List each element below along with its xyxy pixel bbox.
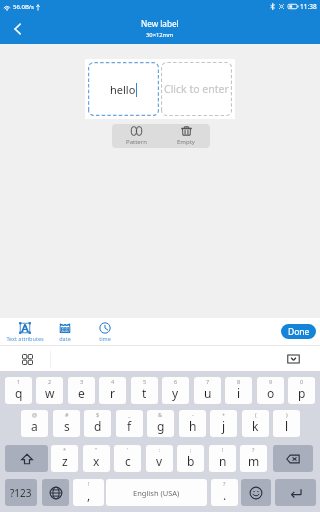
staticText: ?	[223, 480, 226, 487]
staticText: &	[158, 411, 163, 418]
staticText: Text attributes	[6, 335, 44, 342]
button[interactable]: 4	[99, 377, 126, 404]
staticText: *	[63, 446, 67, 453]
button[interactable]: Backspace	[273, 445, 313, 472]
button[interactable]: '	[114, 445, 141, 472]
staticText: s	[64, 418, 70, 434]
staticText: 3	[80, 378, 84, 385]
button[interactable]: !	[73, 479, 104, 506]
staticText: New label	[141, 18, 179, 29]
staticText: j	[222, 418, 226, 434]
staticText: ,	[87, 487, 91, 503]
staticText: x	[93, 453, 100, 469]
staticText: +	[222, 411, 226, 418]
button[interactable]: Enter	[275, 479, 316, 506]
button[interactable]: Pattern	[125, 124, 147, 148]
button[interactable]: 5	[131, 377, 158, 404]
button[interactable]: Hide keyboard	[283, 349, 303, 369]
button[interactable]: Text attributes	[5, 318, 45, 345]
staticText: :	[159, 446, 161, 453]
staticText: #	[65, 411, 69, 418]
staticText: "	[95, 446, 98, 453]
button[interactable]: 7	[194, 377, 221, 404]
staticText: _	[128, 411, 131, 418]
staticText: h	[189, 418, 197, 434]
staticText: z	[62, 453, 68, 469]
staticText: !	[222, 446, 224, 453]
staticText: q	[15, 385, 23, 401]
staticText: g	[157, 418, 165, 434]
staticText: !	[88, 480, 90, 487]
button[interactable]: Click to enter	[161, 62, 232, 116]
staticText: .	[223, 487, 227, 503]
button[interactable]: date	[45, 318, 85, 345]
button[interactable]: Empty	[175, 124, 197, 148]
button[interactable]: !	[209, 445, 236, 472]
button[interactable]: :	[146, 445, 173, 472]
button[interactable]: &	[147, 410, 174, 437]
staticText: 1	[17, 378, 21, 385]
staticText: ;	[190, 446, 192, 453]
button[interactable]: #	[53, 410, 80, 437]
staticText: )	[286, 411, 288, 418]
staticText: Empty	[177, 138, 195, 146]
staticText: a	[31, 418, 38, 434]
staticText: k	[252, 418, 259, 434]
button[interactable]: time	[85, 318, 125, 345]
staticText: f	[127, 418, 132, 434]
staticText: (	[255, 411, 257, 418]
staticText: '	[127, 446, 129, 453]
staticText: -	[192, 411, 194, 418]
button[interactable]: 9	[257, 377, 284, 404]
staticText: 0	[300, 378, 304, 385]
staticText: ?	[252, 446, 255, 453]
staticText: c	[125, 453, 131, 469]
staticText: 2	[48, 378, 52, 385]
staticText: m	[248, 453, 260, 469]
button[interactable]: "	[83, 445, 110, 472]
button[interactable]: 3	[68, 377, 95, 404]
staticText: t	[142, 385, 147, 401]
staticText: 30×12mm	[146, 31, 174, 39]
staticText: time	[99, 335, 111, 342]
button[interactable]: )	[273, 410, 300, 437]
button[interactable]: 2	[36, 377, 63, 404]
button[interactable]: ;	[177, 445, 204, 472]
button[interactable]: -	[179, 410, 206, 437]
button[interactable]: Shift	[5, 445, 48, 472]
staticText: r	[110, 385, 115, 401]
staticText: n	[219, 453, 227, 469]
staticText: ?123	[10, 486, 32, 500]
staticText: Pattern	[126, 138, 147, 146]
staticText: 56.0B/s	[13, 3, 34, 11]
button[interactable]: ?	[211, 479, 238, 506]
button[interactable]: English (USA)	[106, 479, 207, 506]
button[interactable]: ?123	[5, 479, 37, 506]
staticText: Done	[288, 326, 310, 338]
button[interactable]: hello	[88, 62, 159, 116]
staticText: v	[156, 453, 163, 469]
button[interactable]: Done	[281, 324, 316, 339]
button[interactable]: Switch language	[42, 479, 69, 506]
button[interactable]: @	[21, 410, 48, 437]
button[interactable]: ?	[240, 445, 267, 472]
button[interactable]: $	[84, 410, 111, 437]
staticText: date	[59, 335, 71, 342]
button[interactable]: (	[242, 410, 269, 437]
staticText: 11:38	[300, 2, 317, 11]
button[interactable]: *	[51, 445, 78, 472]
button[interactable]: 8	[225, 377, 252, 404]
staticText: $	[96, 411, 100, 418]
staticText: u	[204, 385, 212, 401]
button[interactable]: 6	[162, 377, 189, 404]
staticText: Click to enter	[164, 82, 229, 96]
button[interactable]: +	[210, 410, 237, 437]
button[interactable]: Back	[0, 13, 34, 44]
staticText: w	[45, 385, 55, 401]
staticText: o	[267, 385, 275, 401]
button[interactable]: _	[116, 410, 143, 437]
button[interactable]: 1	[5, 377, 32, 404]
button[interactable]: Emoji	[241, 479, 271, 506]
button[interactable]: 0	[288, 377, 315, 404]
button[interactable]: Keyboard layout	[17, 349, 37, 369]
